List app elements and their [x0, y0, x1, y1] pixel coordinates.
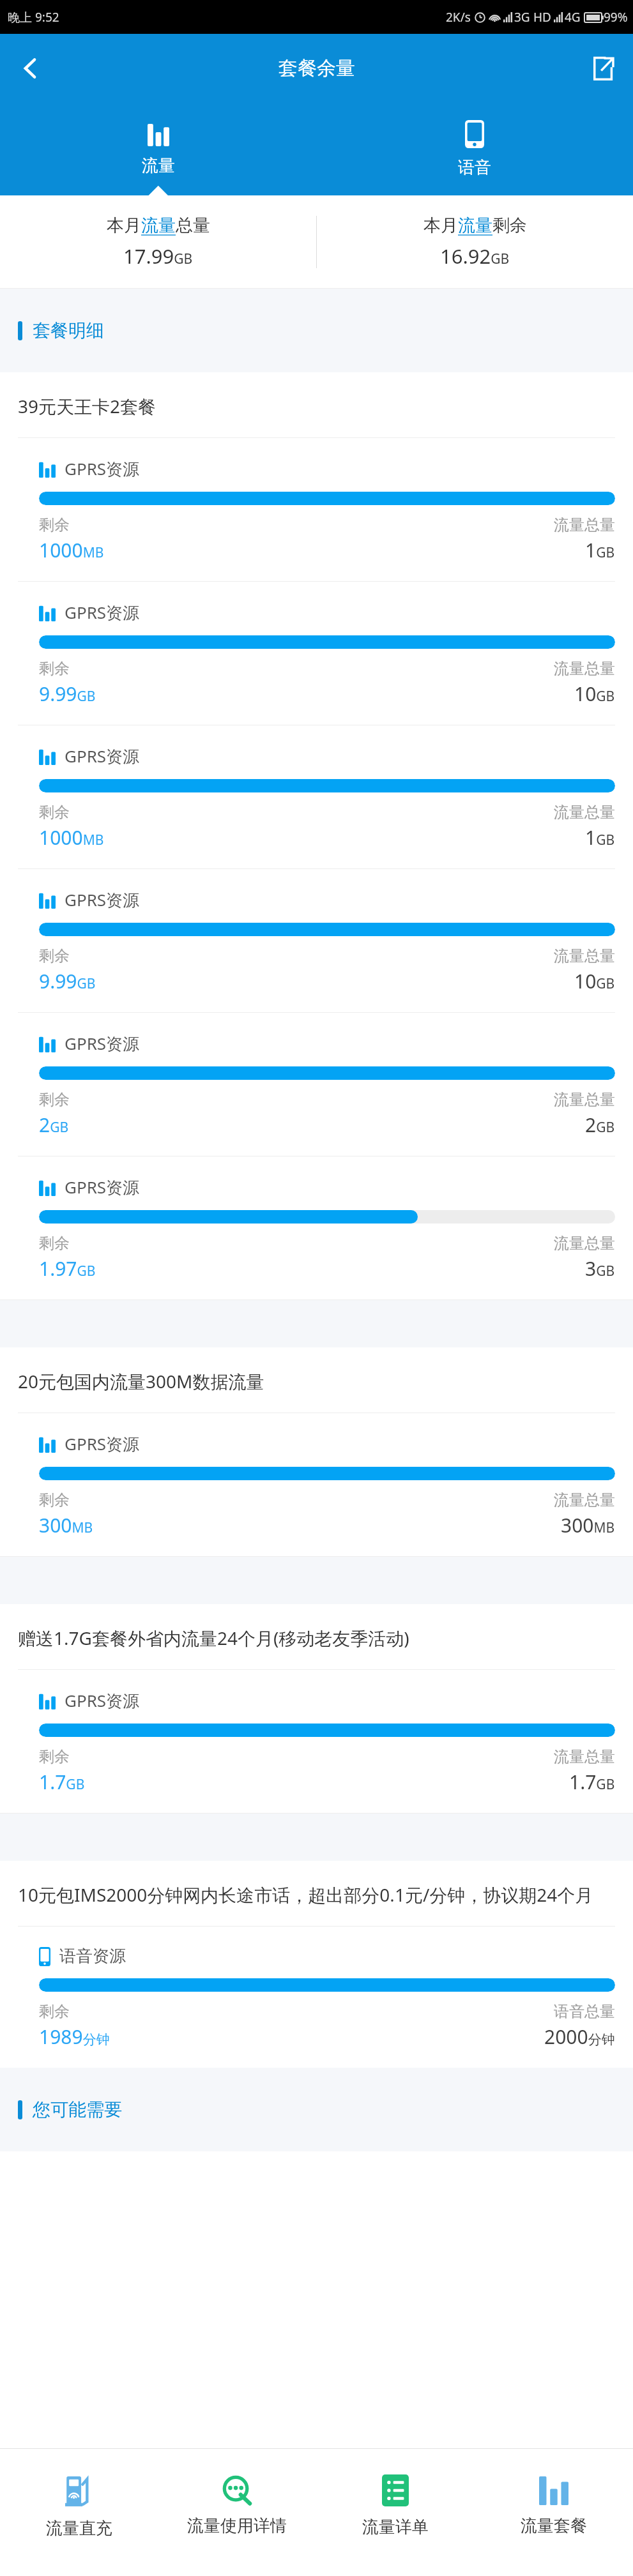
staticText: 本月流量总量 [107, 215, 210, 236]
staticText: 2000分钟 [544, 2024, 615, 2050]
staticText: 3GB [585, 1255, 615, 1282]
button[interactable]: 本月流量总量 [0, 215, 316, 269]
staticText: GPRS资源 [65, 745, 140, 768]
staticText: GPRS资源 [65, 888, 140, 911]
staticText: GPRS资源 [65, 1432, 140, 1455]
staticText: 1.97GB [39, 1255, 96, 1282]
staticText: 39元天王卡2套餐 [18, 394, 156, 418]
staticText: 1.7GB [39, 1769, 85, 1795]
staticText: 2GB [39, 1112, 69, 1138]
staticText: 流量总量 [554, 1234, 615, 1253]
staticText: 剩余 [39, 1490, 70, 1510]
staticText: 流量总量 [554, 1490, 615, 1510]
staticText: GPRS资源 [65, 601, 140, 624]
button[interactable]: 流量 [0, 103, 316, 195]
staticText: 10GB [574, 681, 615, 707]
staticText: 9.99GB [39, 968, 96, 994]
staticText: 1GB [585, 537, 615, 563]
staticText: 4G [565, 9, 581, 26]
staticText: GPRS资源 [65, 457, 140, 480]
button[interactable]: GPRS资源 [0, 869, 633, 1012]
staticText: 流量直充 [46, 2518, 112, 2539]
staticText: 流量使用详情 [187, 2515, 287, 2536]
staticText: GPRS资源 [65, 1032, 140, 1055]
staticText: 流量总量 [554, 659, 615, 678]
staticText: 1GB [585, 824, 615, 851]
staticText: HD [530, 9, 551, 26]
staticText: 流量详单 [362, 2517, 429, 2538]
button[interactable]: GPRS资源 [0, 1156, 633, 1299]
staticText: 语音 [458, 157, 491, 178]
staticText: GPRS资源 [65, 1689, 140, 1712]
staticText: 1989分钟 [39, 2024, 110, 2050]
button[interactable]: 语音资源 [0, 1927, 633, 2068]
staticText: 剩余 [39, 1747, 70, 1766]
button[interactable]: GPRS资源 [0, 438, 633, 581]
staticText: 20元包国内流量300M数据流量 [18, 1369, 264, 1393]
button[interactable]: GPRS资源 [0, 1013, 633, 1156]
staticText: 剩余 [39, 1090, 70, 1109]
staticText: 2GB [585, 1112, 615, 1138]
staticText: 17.99GB [123, 243, 193, 269]
staticText: 2K/s [446, 9, 471, 26]
staticText: 3G [514, 9, 530, 26]
staticText: 流量套餐 [521, 2515, 587, 2536]
button[interactable]: 流量直充 [0, 2449, 158, 2576]
staticText: 1000MB [39, 537, 104, 563]
staticText: 晚上 9:52 [8, 9, 59, 26]
button[interactable]: GPRS资源 [0, 725, 633, 868]
button[interactable]: 流量详单 [316, 2449, 475, 2576]
staticText: 剩余 [39, 659, 70, 678]
staticText: 10GB [574, 968, 615, 994]
staticText: 本月流量剩余 [423, 215, 527, 236]
staticText: 300MB [561, 1512, 615, 1538]
staticText: 流量总量 [554, 515, 615, 534]
staticText: 1000MB [39, 824, 104, 851]
staticText: 您可能需要 [33, 2098, 122, 2121]
staticText: GPRS资源 [65, 1176, 140, 1199]
staticText: 16.92GB [440, 243, 510, 269]
staticText: 套餐余量 [278, 56, 355, 80]
button[interactable]: 流量使用详情 [158, 2449, 316, 2576]
staticText: 套餐明细 [33, 319, 104, 342]
staticText: 语音资源 [59, 1946, 126, 1967]
staticText: 赠送1.7G套餐外省内流量24个月(移动老友季活动) [18, 1626, 409, 1650]
staticText: 9.99GB [39, 681, 96, 707]
button[interactable]: GPRS资源 [0, 1413, 633, 1556]
staticText: 流量总量 [554, 946, 615, 966]
button[interactable]: 语音 [316, 103, 633, 195]
staticText: 流量 [142, 155, 175, 176]
staticText: 300MB [39, 1512, 93, 1538]
staticText: 99% [604, 9, 628, 26]
button[interactable]: 流量套餐 [475, 2449, 633, 2576]
button[interactable]: Back [0, 38, 61, 99]
staticText: 流量总量 [554, 1747, 615, 1766]
staticText: 剩余 [39, 803, 70, 822]
button[interactable]: Share [572, 38, 633, 99]
button[interactable]: 本月流量剩余 [317, 215, 633, 269]
staticText: 剩余 [39, 946, 70, 966]
staticText: 流量总量 [554, 1090, 615, 1109]
button[interactable]: GPRS资源 [0, 1670, 633, 1813]
staticText: 剩余 [39, 2002, 70, 2021]
staticText: 语音总量 [554, 2002, 615, 2021]
staticText: 流量总量 [554, 803, 615, 822]
staticText: 10元包IMS2000分钟网内长途市话，超出部分0.1元/分钟，协议期24个月 [18, 1883, 593, 1907]
staticText: 剩余 [39, 515, 70, 534]
button[interactable]: GPRS资源 [0, 582, 633, 725]
staticText: 剩余 [39, 1234, 70, 1253]
staticText: 1.7GB [569, 1769, 615, 1795]
